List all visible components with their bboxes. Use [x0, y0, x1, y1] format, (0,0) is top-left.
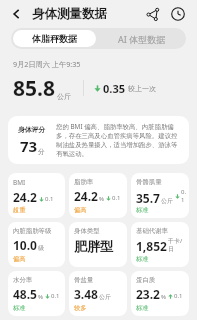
- staticText: 1,852: [136, 238, 167, 254]
- staticText: 偏高: [13, 255, 26, 263]
- button[interactable]: 体脂秤数据: [13, 30, 96, 47]
- staticText: 0.1: [45, 195, 54, 203]
- staticText: 较上一次: [128, 84, 156, 93]
- staticText: 骨骼肌量: [136, 178, 162, 186]
- button[interactable]: 水分率: [8, 271, 65, 316]
- staticText: 73: [20, 136, 38, 156]
- staticText: 24.2: [74, 188, 98, 204]
- staticText: 公斤: [161, 197, 173, 205]
- staticText: 公斤: [57, 92, 71, 101]
- staticText: 脂肪率: [74, 178, 94, 186]
- button[interactable]: 基础代谢率: [131, 222, 189, 267]
- button[interactable]: 骨骼肌量: [131, 173, 189, 218]
- staticText: 较多: [74, 304, 87, 312]
- staticText: 0.1: [112, 194, 121, 202]
- staticText: 身体测量数据: [32, 6, 107, 22]
- staticText: 35.7: [136, 190, 160, 206]
- button[interactable]: 骨盐量: [69, 271, 127, 316]
- staticText: 0.1: [181, 188, 187, 204]
- staticText: %: [161, 293, 166, 301]
- staticText: 标准: [136, 304, 149, 312]
- staticText: 蛋白质: [136, 276, 156, 284]
- staticText: 骨盐量: [74, 276, 94, 284]
- button[interactable]: 脂肪率: [69, 173, 127, 218]
- button[interactable]: 身体类型: [69, 222, 127, 267]
- button[interactable]: BMI: [8, 173, 65, 218]
- staticText: 您的 BMI 偏高、脂肪率较高、内脏脂肪偏多，存在三高及心血管疾病等风险。建议控…: [56, 122, 183, 158]
- button[interactable]: Share: [142, 3, 164, 25]
- staticText: 标准: [13, 304, 26, 312]
- staticText: AI 体型数据: [118, 33, 166, 45]
- staticText: %: [38, 293, 43, 301]
- button[interactable]: 身体评分: [8, 116, 189, 164]
- button[interactable]: 蛋白质: [131, 271, 189, 316]
- staticText: 9月2日周六 上午9:35: [13, 59, 81, 69]
- staticText: 肥胖型: [74, 238, 113, 254]
- staticText: 0.1: [174, 292, 183, 300]
- staticText: 分: [38, 147, 45, 156]
- staticText: 85.8: [13, 74, 55, 103]
- staticText: 身体评分: [18, 125, 46, 134]
- staticText: 23.2: [136, 286, 160, 302]
- staticText: 24.2: [13, 189, 37, 205]
- button[interactable]: AI 体型数据: [98, 28, 186, 49]
- staticText: 内脏脂肪等级: [13, 227, 52, 235]
- staticText: %: [99, 195, 104, 203]
- staticText: 级: [38, 244, 44, 252]
- staticText: 48.5: [13, 286, 37, 302]
- staticText: 基础代谢率: [136, 227, 168, 235]
- staticText: 标准: [136, 255, 149, 263]
- staticText: 公斤: [99, 293, 111, 301]
- staticText: 千卡/日: [168, 237, 187, 253]
- staticText: 标准: [136, 206, 149, 214]
- staticText: 超重: [13, 206, 26, 214]
- button[interactable]: Back: [6, 3, 28, 25]
- staticText: 偏高: [74, 206, 87, 214]
- staticText: 10.0: [13, 237, 37, 253]
- staticText: 0.1: [51, 292, 60, 300]
- staticText: BMI: [13, 178, 26, 187]
- staticText: 0.35: [103, 81, 125, 96]
- staticText: 水分率: [13, 276, 33, 284]
- staticText: 3.48: [74, 286, 98, 302]
- staticText: 体脂秤数据: [32, 33, 77, 44]
- button[interactable]: 内脏脂肪等级: [8, 222, 65, 267]
- button[interactable]: History: [167, 3, 189, 25]
- staticText: 身体类型: [74, 227, 100, 235]
